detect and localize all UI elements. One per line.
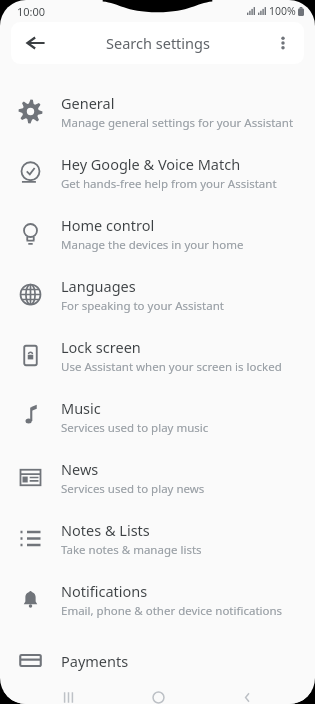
other: Languages [18, 282, 43, 307]
staticText: Manage general settings for your Assista… [61, 115, 294, 131]
staticText: Services used to play news [61, 481, 205, 497]
staticText: 100% [269, 4, 296, 18]
button[interactable]: Home [136, 691, 180, 704]
other: General [18, 99, 43, 124]
staticText: Notifications [61, 581, 148, 601]
staticText: General [61, 93, 115, 113]
staticText: For speaking to your Assistant [61, 298, 224, 314]
button[interactable]: Lock screen [0, 325, 315, 386]
other: Payments [18, 648, 43, 673]
staticText: 10:00 [17, 4, 46, 19]
staticText: News [61, 459, 99, 479]
staticText: Email, phone & other device notification… [61, 603, 283, 619]
button[interactable]: General [0, 81, 315, 142]
staticText: Services used to play music [61, 420, 209, 436]
staticText: Search settings [106, 33, 210, 53]
other: Notifications [18, 587, 43, 612]
staticText: Home control [61, 215, 155, 235]
other: Music [18, 404, 43, 429]
other: Notes and Lists [18, 526, 43, 551]
staticText: Notes & Lists [61, 520, 150, 540]
button[interactable]: News [0, 447, 315, 508]
button[interactable]: Languages [0, 264, 315, 325]
button[interactable]: Back [23, 30, 49, 56]
other: Home control [18, 221, 43, 246]
staticText: Languages [61, 276, 136, 296]
other: Hey Google and Voice Match [18, 160, 43, 185]
staticText: Manage the devices in your home [61, 237, 244, 253]
button[interactable]: Music [0, 386, 315, 447]
staticText: Payments [61, 651, 129, 671]
other: News [18, 465, 43, 490]
button[interactable]: Payments [0, 630, 315, 691]
button[interactable]: Back [225, 691, 269, 704]
staticText: Music [61, 398, 101, 418]
other: Lock screen [18, 343, 43, 368]
staticText: Use Assistant when your screen is locked [61, 359, 282, 375]
button[interactable]: Home control [0, 203, 315, 264]
button[interactable]: Notifications [0, 569, 315, 630]
button[interactable]: Recent apps [46, 691, 90, 704]
staticText: Hey Google & Voice Match [61, 154, 241, 174]
button[interactable]: Notes and Lists [0, 508, 315, 569]
staticText: Take notes & manage lists [61, 542, 202, 558]
staticText: Lock screen [61, 337, 141, 357]
button[interactable]: More options [271, 31, 295, 55]
button[interactable]: Hey Google and Voice Match [0, 142, 315, 203]
staticText: Get hands-free help from your Assistant [61, 176, 277, 192]
